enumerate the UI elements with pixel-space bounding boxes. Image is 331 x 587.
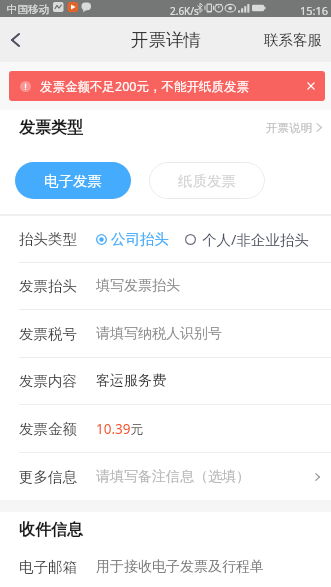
staticText: 客运服务费 bbox=[96, 372, 166, 390]
button[interactable]: 纸质发票 bbox=[149, 162, 265, 199]
staticText: 请填写备注信息（选填） bbox=[96, 468, 250, 486]
staticText: 用于接收电子发票及行程单 bbox=[96, 558, 264, 576]
staticText: 纸质发票 bbox=[178, 172, 236, 190]
staticText: 公司抬头 bbox=[111, 230, 169, 248]
button[interactable]: 发票税号 bbox=[0, 310, 331, 357]
button[interactable]: 开票说明 bbox=[83, 110, 331, 145]
staticText: 发票金额不足200元，不能开纸质发票 bbox=[40, 78, 249, 95]
staticText: 电子邮箱 bbox=[19, 558, 77, 576]
button[interactable]: 公司抬头 bbox=[96, 230, 169, 248]
staticText: 开票详情 bbox=[131, 29, 201, 51]
staticText: 10.39元 bbox=[96, 420, 144, 438]
staticText: 2.6K/s bbox=[170, 4, 199, 18]
staticText: 发票内容 bbox=[19, 372, 77, 390]
button[interactable]: 个人/非企业抬头 bbox=[185, 229, 309, 249]
button[interactable]: 发票金额 bbox=[0, 405, 331, 452]
staticText: 发票税号 bbox=[19, 325, 77, 343]
staticText: 抬头类型 bbox=[19, 230, 77, 248]
button[interactable]: Close bbox=[298, 73, 324, 99]
button[interactable]: 发票抬头 bbox=[0, 263, 331, 309]
button[interactable]: 电子邮箱 bbox=[0, 547, 331, 587]
staticText: 收件信息 bbox=[19, 520, 83, 540]
staticText: 联系客服 bbox=[264, 31, 322, 49]
staticText: 请填写纳税人识别号 bbox=[96, 325, 222, 343]
button[interactable]: Back bbox=[0, 17, 31, 62]
button[interactable]: 联系客服 bbox=[0, 17, 331, 62]
staticText: 电子发票 bbox=[44, 172, 102, 190]
button[interactable]: 电子发票 bbox=[15, 162, 131, 199]
staticText: 个人/非企业抬头 bbox=[202, 229, 309, 249]
staticText: 发票抬头 bbox=[19, 277, 77, 295]
button[interactable]: 发票内容 bbox=[0, 358, 331, 404]
staticText: 15:16 bbox=[300, 3, 329, 18]
staticText: 发票类型 bbox=[19, 118, 83, 138]
staticText: 开票说明 bbox=[266, 121, 312, 135]
staticText: 发票金额 bbox=[19, 420, 77, 438]
staticText: 中国移动 bbox=[7, 3, 49, 16]
staticText: 更多信息 bbox=[19, 468, 77, 486]
button[interactable]: 更多信息 bbox=[0, 453, 331, 500]
staticText: 填写发票抬头 bbox=[96, 277, 180, 295]
